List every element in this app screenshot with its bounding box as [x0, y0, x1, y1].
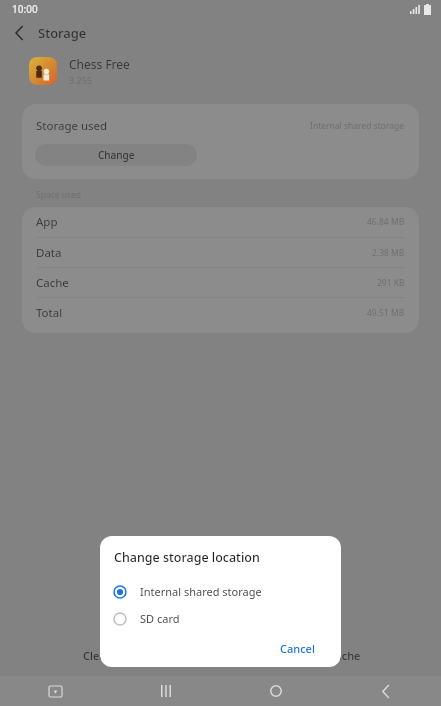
staticText: Storage used	[36, 118, 108, 134]
staticText: 2.38 MB	[372, 247, 405, 259]
staticText: 3.255	[69, 74, 93, 86]
staticText: Data	[36, 245, 62, 261]
button[interactable]: Data	[22, 238, 419, 267]
staticText: Cache	[36, 275, 69, 291]
button[interactable]: SD card	[100, 605, 341, 632]
staticText: Internal shared storage	[140, 584, 262, 599]
button[interactable]: Internal shared storage	[100, 578, 341, 605]
staticText: 49.51 MB	[367, 307, 405, 319]
staticText: Chess Free	[69, 56, 130, 72]
button[interactable]: Clear data	[0, 640, 220, 670]
button[interactable]: Chess Free	[0, 48, 441, 94]
button[interactable]: Back	[331, 676, 441, 706]
button[interactable]: Clear cache	[220, 640, 441, 670]
staticText: App	[36, 214, 58, 230]
button[interactable]: Change	[35, 144, 197, 166]
button[interactable]: App	[22, 207, 419, 237]
staticText: 291 KB	[377, 277, 405, 289]
staticText: Clear data	[83, 648, 137, 663]
staticText: Total	[36, 305, 63, 321]
staticText: Internal shared storage	[310, 120, 405, 132]
button[interactable]: Total	[22, 298, 419, 327]
staticText: 10:00	[12, 2, 38, 16]
button[interactable]: Recent apps	[111, 676, 221, 706]
button[interactable]: Home	[221, 676, 331, 706]
button[interactable]: Cache	[22, 268, 419, 297]
button[interactable]: Hide keyboard	[0, 676, 111, 706]
staticText: Space used	[36, 189, 82, 201]
staticText: Change	[98, 148, 135, 162]
staticText: Clear cache	[300, 648, 361, 663]
staticText: SD card	[140, 611, 180, 626]
staticText: Storage	[38, 24, 87, 42]
staticText: Cancel	[280, 641, 315, 656]
button[interactable]: Cancel	[268, 636, 327, 661]
staticText: 46.84 MB	[367, 216, 405, 228]
button[interactable]: Back	[8, 22, 30, 44]
staticText: Change storage location	[114, 549, 260, 566]
